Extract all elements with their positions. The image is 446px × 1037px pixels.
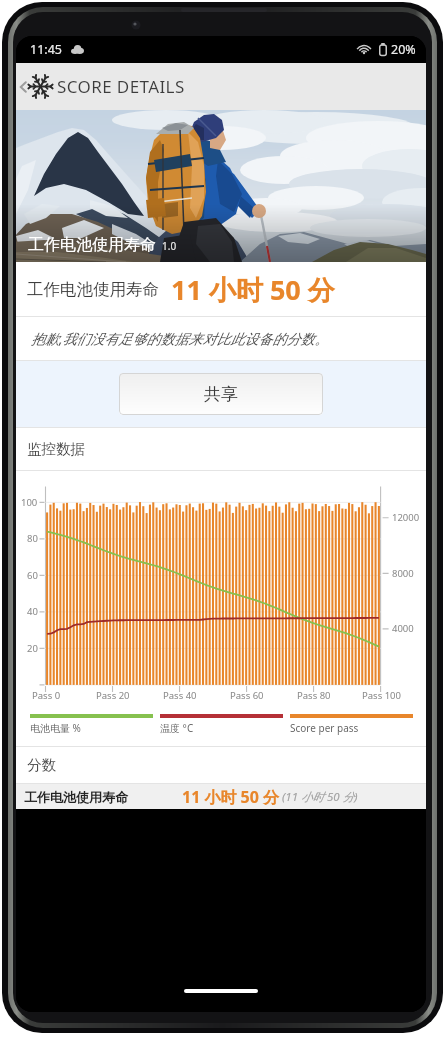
staticText: 抱歉,我们没有足够的数据来对比此设备的分数。 (31, 329, 329, 348)
staticText: 分数 (27, 756, 56, 774)
staticText: Pass 80 (297, 689, 331, 702)
staticText: 20% (391, 41, 416, 58)
button[interactable]: Back (16, 63, 426, 110)
staticText: 11:45 (30, 41, 62, 58)
staticText: 20 (27, 642, 38, 655)
staticText: 12000 (392, 511, 420, 524)
staticText: (11 小时 50 分) (282, 789, 358, 805)
staticText: 温度 °C (160, 721, 194, 735)
staticText: Pass 60 (230, 689, 264, 702)
staticText: 11 小时 50 分 (171, 271, 335, 308)
other: Back (16, 80, 30, 94)
staticText: 工作电池使用寿命 (28, 235, 156, 255)
staticText: 80 (27, 532, 38, 545)
staticText: 监控数据 (27, 440, 85, 458)
button[interactable]: 工作电池使用寿命 (16, 784, 426, 809)
staticText: 40 (27, 605, 38, 618)
staticText: 11 小时 50 分 (182, 786, 280, 808)
staticText: 工作电池使用寿命 (24, 789, 128, 805)
staticText: 60 (27, 569, 38, 582)
staticText: SCORE DETAILS (57, 75, 185, 98)
staticText: Score per pass (290, 721, 359, 735)
staticText: 电池电量 % (30, 721, 81, 735)
staticText: 4000 (392, 622, 414, 635)
staticText: 共享 (204, 384, 238, 405)
staticText: 1.0 (162, 239, 177, 253)
staticText: Pass 0 (32, 689, 61, 702)
staticText: Pass 100 (362, 689, 401, 702)
staticText: 8000 (392, 567, 414, 580)
staticText: Pass 20 (96, 689, 130, 702)
staticText: 工作电池使用寿命 (27, 279, 159, 300)
button[interactable]: 共享 (119, 373, 323, 415)
staticText: 100 (21, 496, 38, 509)
staticText: Pass 40 (163, 689, 197, 702)
